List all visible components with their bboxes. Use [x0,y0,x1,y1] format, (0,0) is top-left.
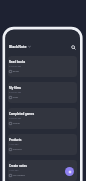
staticText: 5 months ago [9,117,22,120]
button[interactable]: Add note [65,167,74,176]
staticText: 1 year ago [9,143,19,146]
button[interactable]: Products [8,134,77,155]
staticText: Games [13,122,20,125]
button[interactable]: Create notes [8,160,77,181]
staticText: 2 months ago [9,65,22,68]
staticText: My films [9,86,21,90]
button[interactable]: Read books [8,56,77,77]
staticText: 3 months ago [9,91,22,94]
staticText: BlackNote [9,44,27,49]
button[interactable]: Search [69,43,77,51]
button[interactable]: Completed games [8,108,77,129]
button[interactable]: BlackNote [9,44,31,52]
staticText: Products [9,138,22,142]
staticText: Films [13,96,19,99]
staticText: Create notes [9,164,27,168]
staticText: 1 year ago [9,169,19,172]
staticText: My category [13,174,26,177]
button[interactable]: My films [8,82,77,103]
staticText: Completed games [9,112,35,116]
staticText: Read books [9,60,26,64]
staticText: Products [13,148,22,151]
staticText: Books [13,70,20,73]
